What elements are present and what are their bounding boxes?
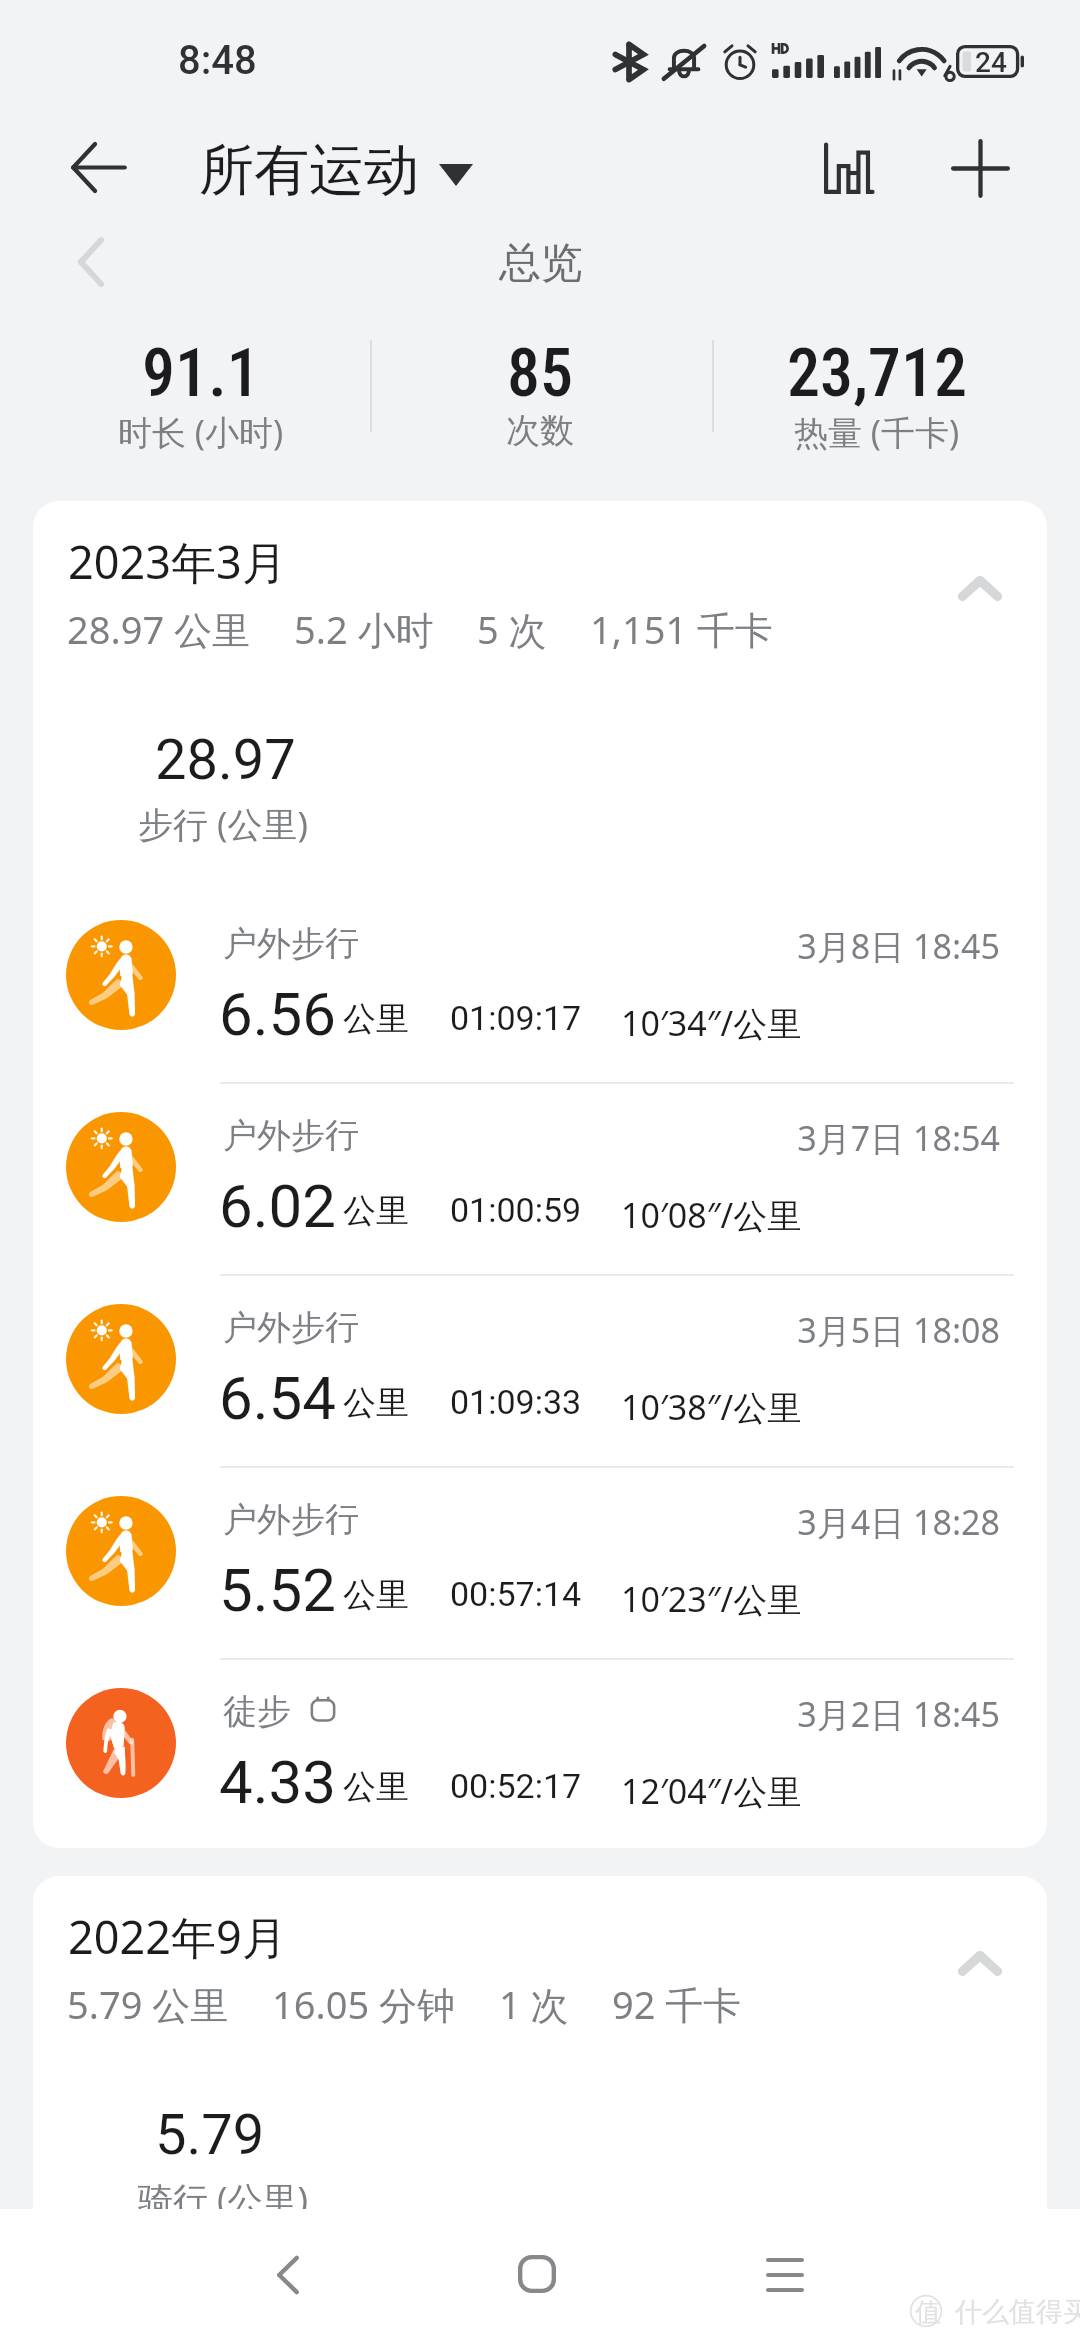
staticText: 户外步行	[223, 922, 359, 965]
other: Collapse	[960, 1952, 1000, 1974]
staticText: 00:57:14	[450, 1574, 582, 1614]
button[interactable]: 2023年3月	[33, 501, 1047, 681]
button[interactable]: 23,712	[727, 300, 1027, 480]
staticText: 5.79 公里	[67, 1978, 229, 2030]
button[interactable]: 所有运动	[199, 124, 473, 217]
staticText: 5 次	[477, 603, 547, 655]
staticText: 公里	[343, 1766, 409, 1808]
staticText: 5.52	[219, 1555, 336, 1625]
button[interactable]: Statistics	[800, 121, 896, 217]
button[interactable]: 户外步行	[33, 884, 1047, 1076]
staticText: 12′04″/公里	[621, 1768, 802, 1814]
staticText: 公里	[343, 1190, 409, 1232]
button[interactable]: Home	[477, 2214, 597, 2334]
staticText: 时长 (小时)	[118, 409, 284, 455]
staticText: 00:52:17	[450, 1766, 582, 1806]
staticText: 28.97	[155, 727, 296, 793]
button[interactable]: Previous period	[56, 227, 126, 297]
staticText: 5.79	[155, 2102, 265, 2168]
staticText: 6.56	[219, 979, 336, 1049]
button[interactable]: Add	[932, 120, 1028, 216]
staticText: 10′08″/公里	[621, 1192, 802, 1238]
button[interactable]: 85	[390, 300, 690, 480]
staticText: 23,712	[787, 335, 968, 412]
staticText: 10′34″/公里	[621, 1000, 802, 1046]
button[interactable]: 户外步行	[33, 1076, 1047, 1268]
staticText: 户外步行	[223, 1306, 359, 1349]
staticText: 公里	[343, 1574, 409, 1616]
button[interactable]: 户外步行	[33, 1268, 1047, 1460]
staticText: 1 次	[499, 1978, 569, 2030]
button[interactable]: Recents	[725, 2215, 845, 2335]
staticText: 1,151 千卡	[590, 603, 774, 655]
staticText: 什么值得买	[955, 2295, 1080, 2329]
staticText: 4.33	[219, 1747, 336, 1817]
button[interactable]: 2022年9月	[33, 1876, 1047, 2056]
staticText: 所有运动	[199, 136, 419, 205]
staticText: 骑行 (公里)	[138, 2175, 309, 2223]
staticText: 值	[915, 2296, 941, 2329]
staticText: 91.1	[142, 335, 260, 412]
staticText: 3月2日 18:45	[33, 1691, 1000, 1737]
staticText: 28.97 公里	[67, 603, 251, 655]
staticText: 公里	[343, 998, 409, 1040]
staticText: 6.54	[219, 1363, 336, 1433]
staticText: 3月5日 18:08	[33, 1307, 1000, 1353]
staticText: 10′23″/公里	[621, 1576, 802, 1622]
staticText: 次数	[506, 409, 574, 452]
button[interactable]: 徒步	[33, 1652, 1047, 1844]
staticText: 热量 (千卡)	[794, 409, 960, 455]
staticText: 8:48	[178, 37, 257, 84]
staticText: 85	[507, 335, 574, 412]
staticText: 公里	[343, 1382, 409, 1424]
staticText: 3月8日 18:45	[33, 923, 1000, 969]
button[interactable]: 户外步行	[33, 1460, 1047, 1652]
staticText: 步行 (公里)	[138, 800, 309, 848]
staticText: 92 千卡	[612, 1978, 742, 2030]
staticText: 户外步行	[223, 1114, 359, 1157]
staticText: 2022年9月	[68, 1906, 287, 1967]
other: Collapse	[960, 577, 1000, 599]
staticText: 01:09:33	[450, 1382, 582, 1422]
staticText: 徒步	[223, 1690, 291, 1733]
staticText: 24	[975, 46, 1007, 79]
staticText: 01:00:59	[450, 1190, 582, 1230]
button[interactable]: Back	[228, 2215, 348, 2335]
staticText: 户外步行	[223, 1498, 359, 1541]
button[interactable]: Back	[51, 119, 147, 215]
staticText: 01:09:17	[450, 998, 582, 1038]
staticText: 16.05 分钟	[272, 1978, 456, 2030]
staticText: 5.2 小时	[294, 603, 434, 655]
staticText: 2023年3月	[68, 531, 287, 592]
staticText: 总览	[499, 237, 583, 290]
staticText: 3月7日 18:54	[33, 1115, 1000, 1161]
staticText: 10′38″/公里	[621, 1384, 802, 1430]
staticText: 3月4日 18:28	[33, 1499, 1000, 1545]
button[interactable]: 91.1	[51, 300, 351, 480]
staticText: 6.02	[219, 1171, 336, 1241]
